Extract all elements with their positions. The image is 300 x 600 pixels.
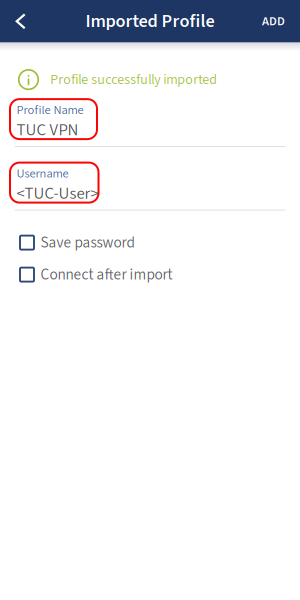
button[interactable]: Save password <box>0 227 300 259</box>
button[interactable]: Back <box>0 0 42 42</box>
button[interactable]: ADD <box>262 0 300 42</box>
staticText: Profile successfully imported <box>50 70 217 89</box>
button[interactable]: Connect after import <box>0 259 300 291</box>
staticText: Imported Profile <box>85 8 214 34</box>
staticText: ADD <box>262 12 285 30</box>
staticText: Connect after import <box>40 264 172 285</box>
staticText: TUC VPN <box>16 118 78 142</box>
staticText: Username <box>16 165 68 182</box>
staticText: Profile Name <box>16 101 83 119</box>
staticText: Save password <box>40 232 134 253</box>
staticText: <TUC-User> <box>16 182 98 205</box>
